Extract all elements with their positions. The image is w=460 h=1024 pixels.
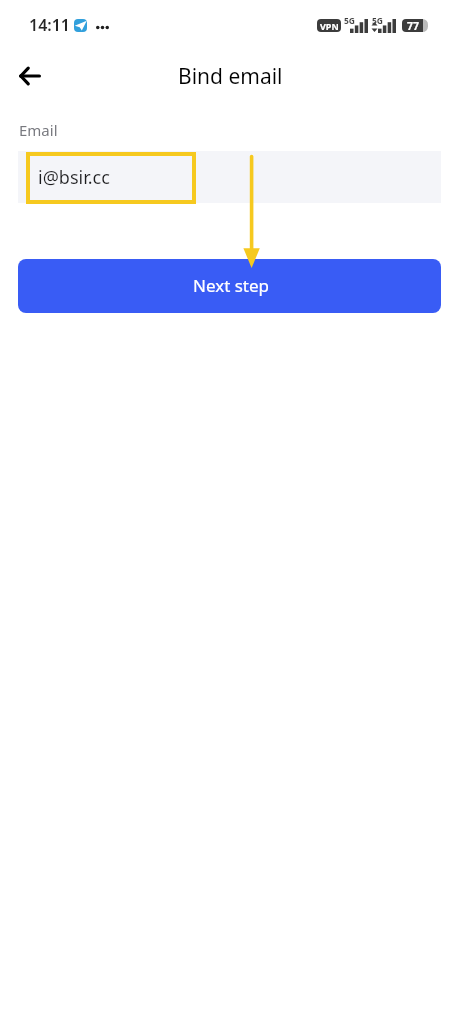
staticText: Email [19,120,58,140]
button[interactable]: Email input [18,151,441,203]
staticText: 77 [407,19,420,32]
staticText: Next step [193,274,270,297]
staticText: 14:11 [29,14,71,36]
staticText: 5G [344,15,356,27]
button[interactable]: Next step [18,259,441,313]
staticText: 5G [372,15,384,27]
staticText: VPN [320,20,339,32]
staticText: i@bsir.cc [38,165,110,190]
button[interactable]: Back [8,54,52,98]
staticText: Bind email [178,62,283,91]
